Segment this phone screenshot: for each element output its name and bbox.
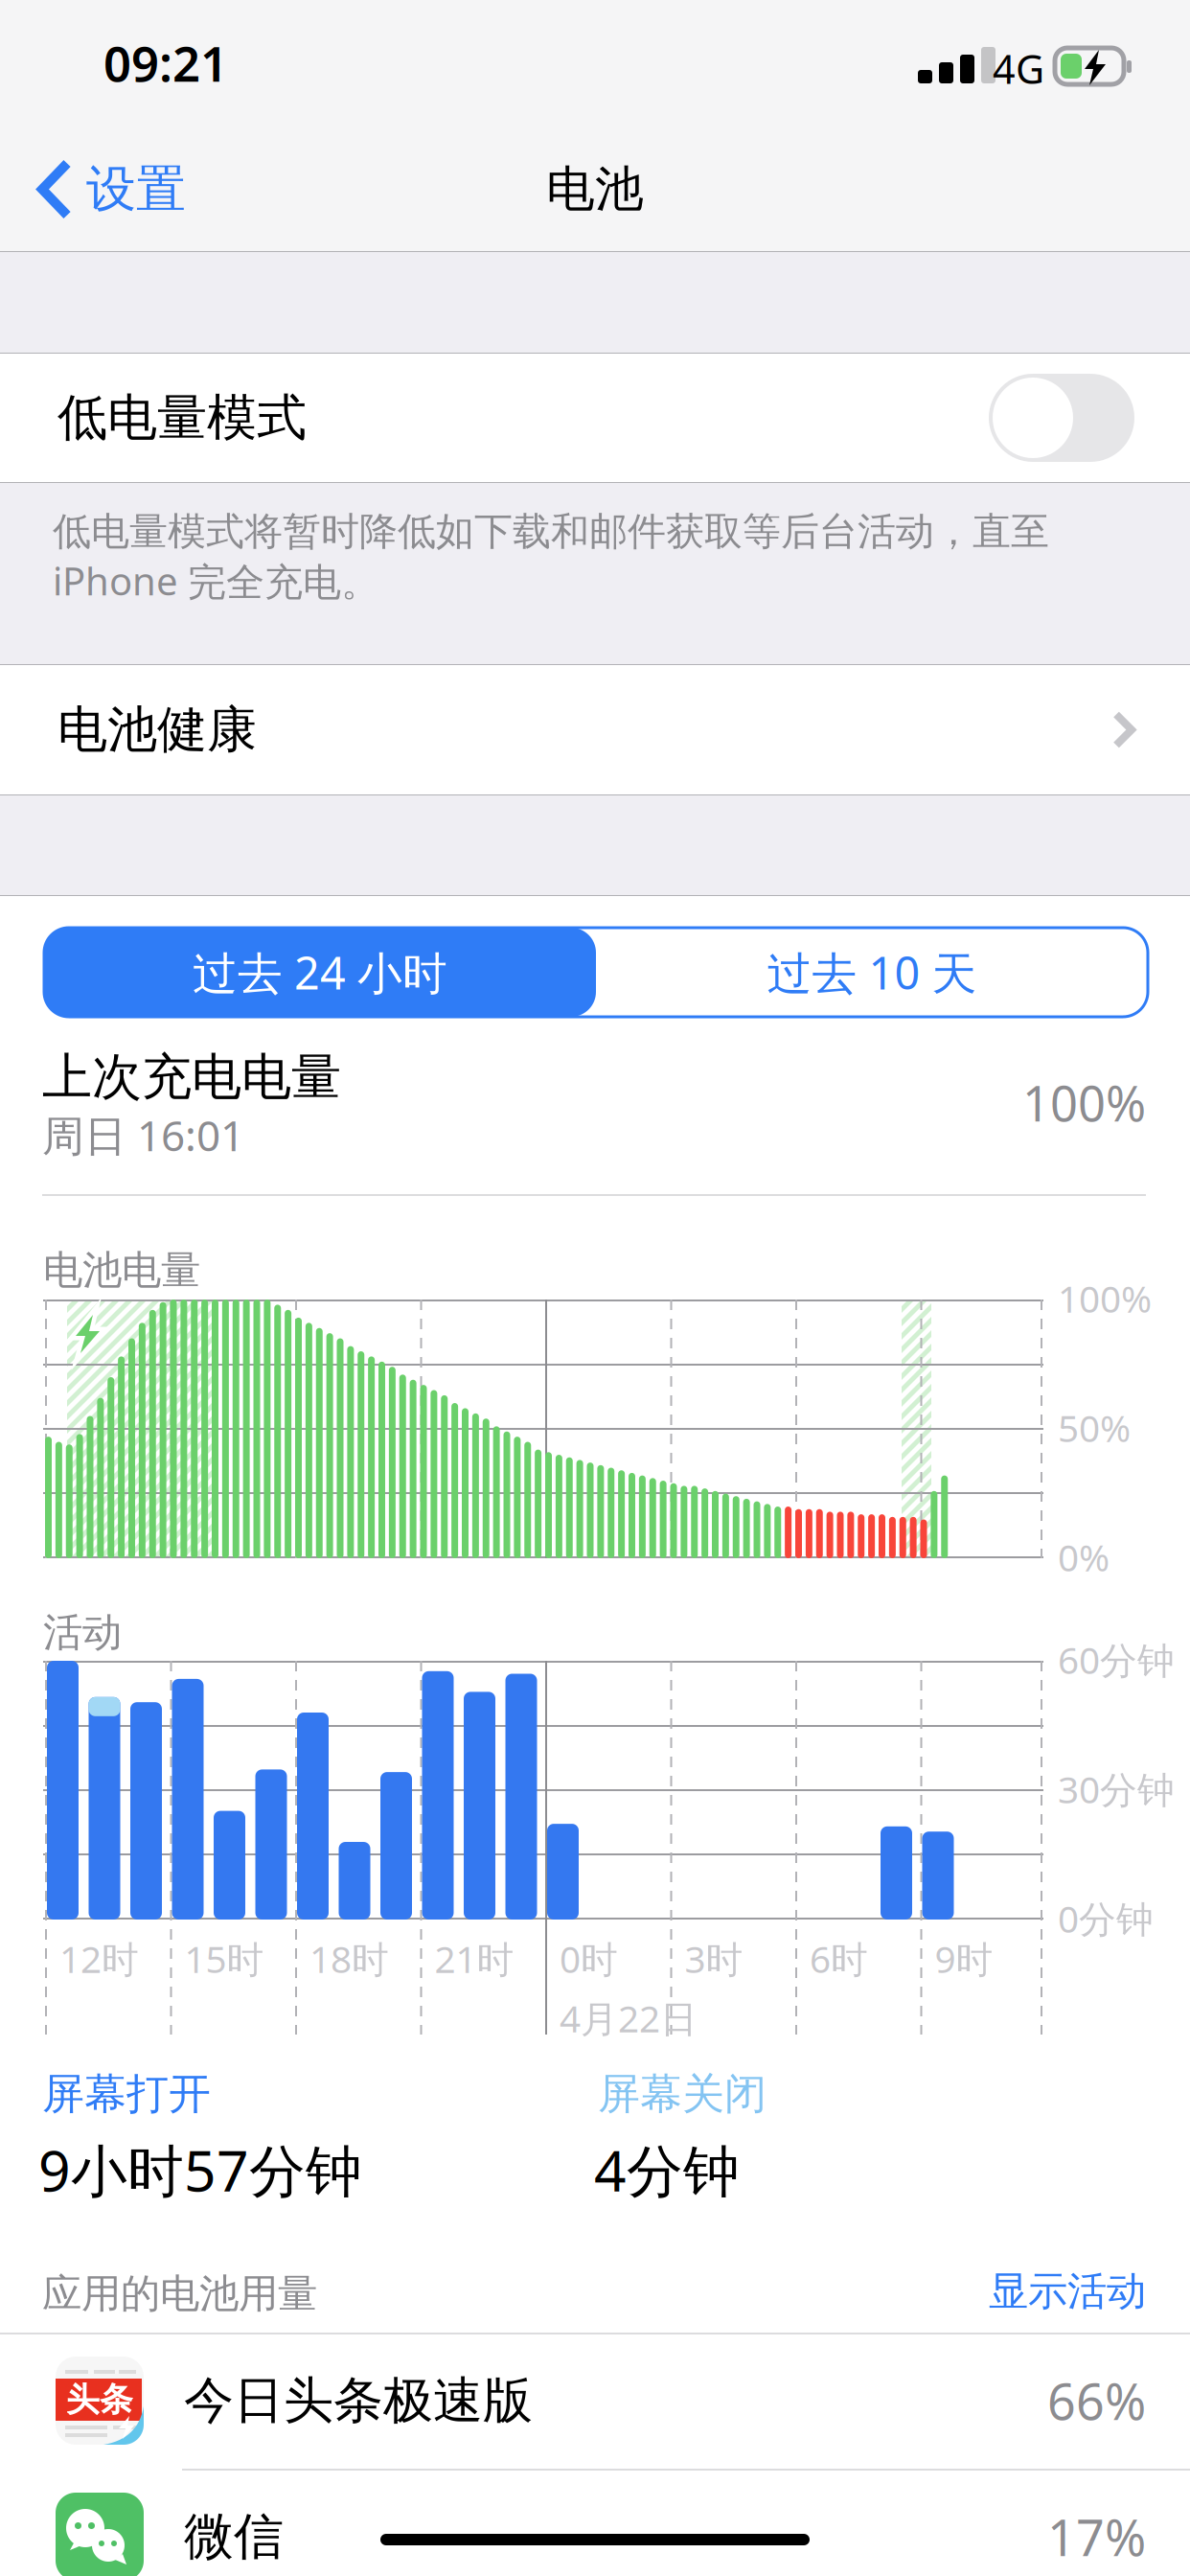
staticText: 50% <box>1058 1403 1131 1452</box>
staticText: 9时 <box>935 1934 993 1983</box>
staticText: iPhone 完全充电。 <box>53 555 379 606</box>
staticText: 周日 16:01 <box>42 1107 244 1163</box>
staticText: 9小时57分钟 <box>38 2132 362 2207</box>
button[interactable]: 微信 <box>0 2469 1190 2576</box>
staticText: 0% <box>1058 1532 1110 1582</box>
staticText: 显示活动 <box>989 2267 1146 2316</box>
staticText: 屏幕打开 <box>42 2068 211 2120</box>
staticText: 低电量模式将暂时降低如下载和邮件获取等后台活动，直至 <box>53 508 1049 555</box>
staticText: 66% <box>1047 2368 1146 2434</box>
staticText: 头条 <box>66 2379 133 2420</box>
staticText: 低电量模式 <box>57 387 307 448</box>
button[interactable]: 过去 10 天 <box>596 928 1148 1017</box>
staticText: 4月22日 <box>560 1993 698 2042</box>
staticText: 6时 <box>810 1934 868 1983</box>
staticText: 设置 <box>86 159 186 220</box>
staticText: 18时 <box>309 1934 389 1983</box>
staticText: 活动 <box>43 1608 122 1657</box>
button[interactable]: 低电量模式 <box>0 354 1190 482</box>
staticText: 屏幕关闭 <box>598 2068 767 2120</box>
button[interactable]: 显示活动 <box>858 2269 1146 2313</box>
staticText: 4G <box>993 42 1044 95</box>
staticText: 100% <box>1022 1070 1146 1135</box>
staticText: 100% <box>1058 1274 1152 1323</box>
staticText: 上次充电电量 <box>42 1046 341 1108</box>
button[interactable]: 电池健康 <box>0 665 1190 794</box>
staticText: 21时 <box>435 1934 514 1983</box>
button[interactable]: 设置 <box>0 126 209 252</box>
staticText: 电池 <box>546 159 644 219</box>
staticText: 过去 24 小时 <box>193 943 447 1002</box>
staticText: 4分钟 <box>594 2132 740 2207</box>
staticText: 应用的电池用量 <box>42 2269 317 2318</box>
staticText: 今日头条极速版 <box>184 2370 533 2431</box>
staticText: 电池健康 <box>57 699 257 760</box>
staticText: 微信 <box>184 2506 284 2567</box>
staticText: 0时 <box>560 1934 618 1983</box>
staticText: 09:21 <box>103 31 228 95</box>
staticText: 过去 10 天 <box>767 943 977 1002</box>
button[interactable]: 过去 24 小时 <box>44 928 596 1017</box>
staticText: 3时 <box>685 1934 743 1983</box>
staticText: 电池电量 <box>43 1246 200 1295</box>
staticText: 30分钟 <box>1058 1764 1175 1813</box>
staticText: 0分钟 <box>1058 1894 1154 1943</box>
staticText: 15时 <box>184 1934 264 1983</box>
staticText: 60分钟 <box>1058 1635 1175 1684</box>
staticText: 12时 <box>59 1934 139 1983</box>
staticText: 17% <box>1047 2504 1146 2570</box>
button[interactable]: 头条 <box>0 2333 1190 2469</box>
